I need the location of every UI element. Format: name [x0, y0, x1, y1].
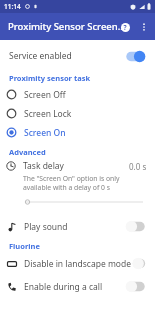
- staticText: Disable in landscape mode: [24, 258, 132, 270]
- button[interactable]: Help: [115, 17, 135, 37]
- button[interactable]: Screen Lock: [0, 104, 155, 123]
- staticText: Screen Lock: [24, 108, 72, 120]
- staticText: 0.0 s: [129, 161, 147, 172]
- button[interactable]: Service enabled: [0, 45, 155, 67]
- button[interactable]: Task delay slider: [0, 192, 155, 212]
- button[interactable]: Disable in landscape mode: [0, 252, 155, 275]
- button[interactable]: More options: [135, 18, 153, 36]
- staticText: Play sound: [24, 221, 68, 233]
- staticText: Screen On: [24, 127, 66, 139]
- button[interactable]: Screen Off: [0, 85, 155, 104]
- staticText: ?: [123, 23, 127, 32]
- staticText: Fluorine: [9, 241, 40, 251]
- staticText: 11:14: [4, 2, 21, 11]
- staticText: Enable during a call: [24, 281, 103, 293]
- staticText: Advanced: [9, 147, 46, 157]
- button[interactable]: Screen On: [0, 123, 155, 142]
- button[interactable]: Play sound: [0, 215, 155, 238]
- staticText: Proximity Sensor Screen...: [8, 20, 126, 33]
- staticText: Task delay: [23, 160, 64, 172]
- button[interactable]: Task delay: [0, 157, 155, 192]
- staticText: Screen Off: [24, 89, 66, 101]
- button[interactable]: Enable during a call: [0, 275, 155, 298]
- staticText: Proximity sensor task: [9, 73, 91, 83]
- staticText: The "Screen On" option is only available…: [23, 174, 145, 192]
- staticText: Service enabled: [9, 50, 72, 62]
